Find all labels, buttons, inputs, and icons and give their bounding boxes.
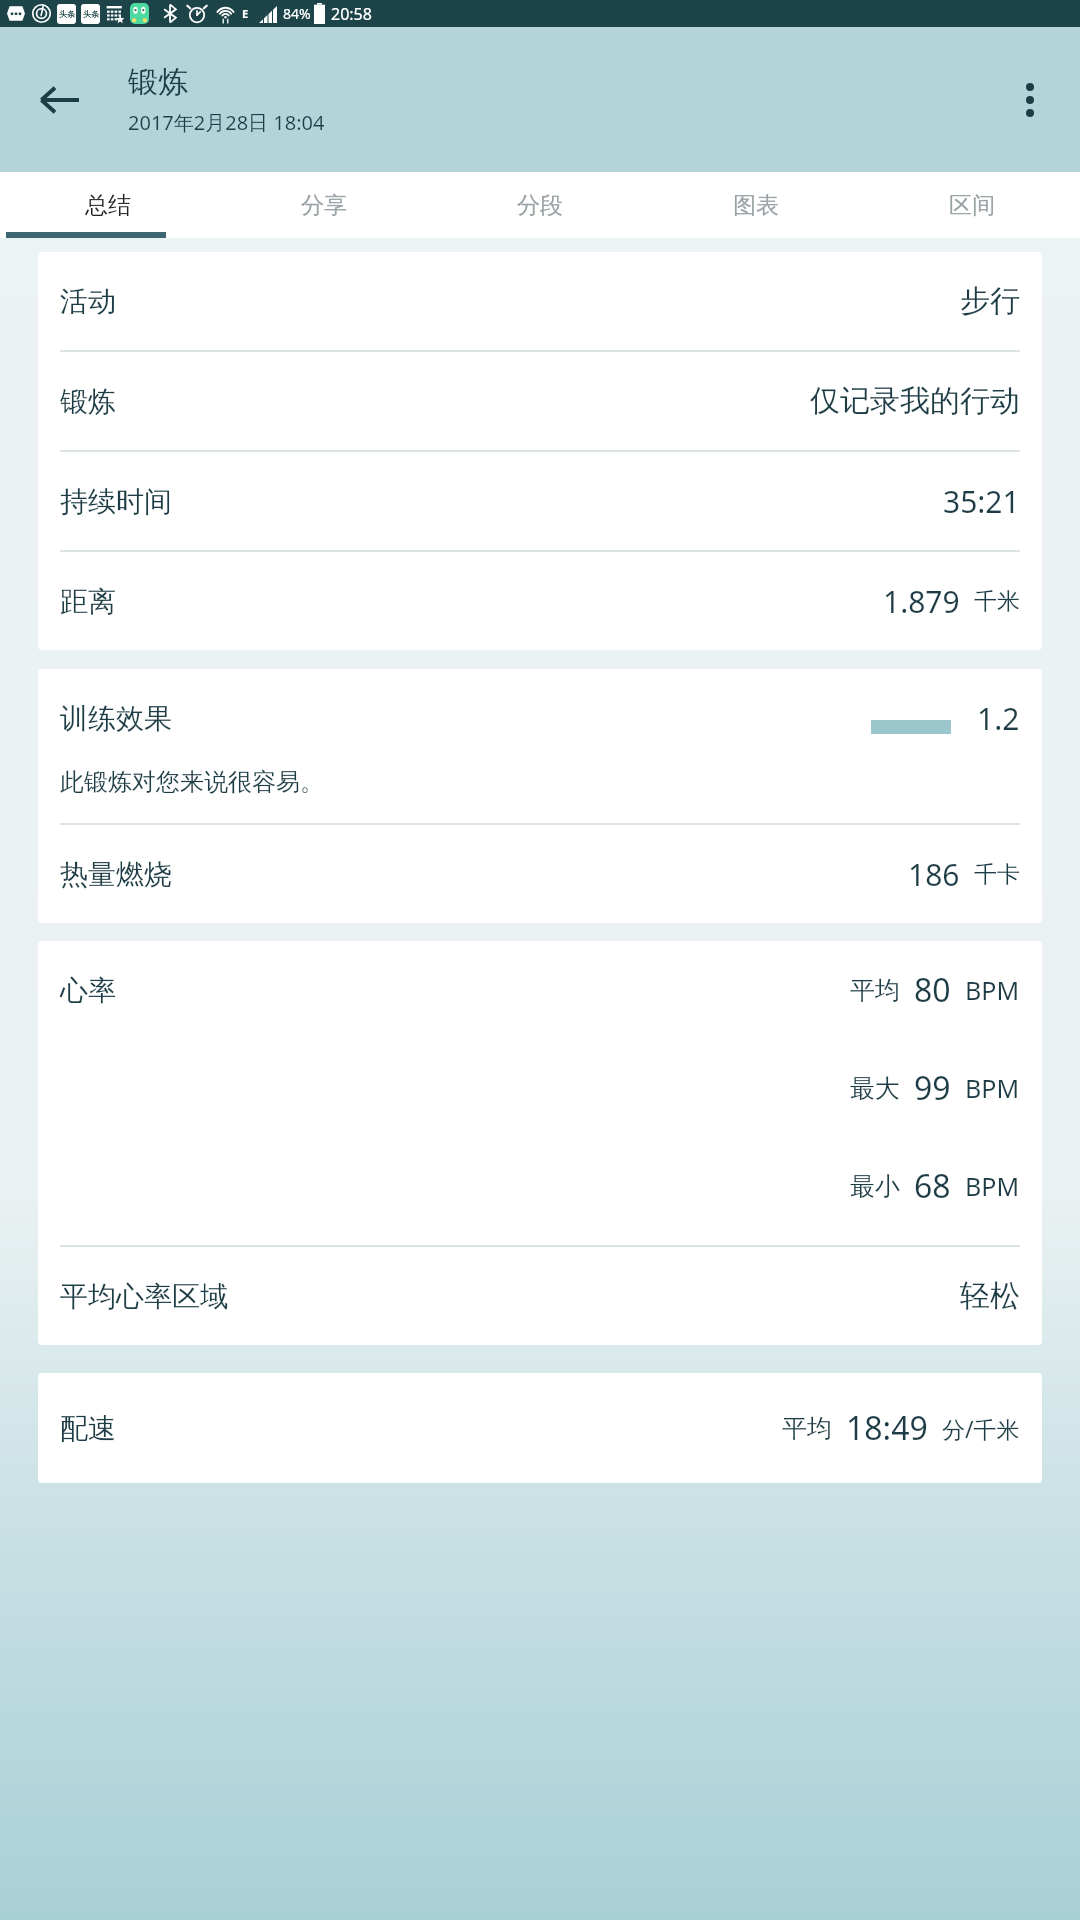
staticText: 锻炼 xyxy=(60,384,116,419)
staticText: 锻炼 xyxy=(128,63,188,101)
button[interactable]: 距离 xyxy=(60,552,1020,650)
staticText: 配速 xyxy=(60,1411,116,1446)
staticText: 分享 xyxy=(301,191,347,220)
staticText: BPM xyxy=(965,1071,1020,1105)
staticText: 仅记录我的行动 xyxy=(810,382,1020,420)
staticText: 步行 xyxy=(960,282,1020,320)
staticText: 186 xyxy=(908,854,960,895)
button[interactable]: 总结 xyxy=(0,172,216,238)
staticText: 最大 xyxy=(850,1073,900,1104)
staticText: 训练效果 xyxy=(60,701,172,736)
staticText: 1.879 xyxy=(883,581,960,622)
staticText: 平均 xyxy=(850,975,900,1006)
staticText: 99 xyxy=(914,1066,951,1110)
staticText: 84% xyxy=(283,4,311,23)
button[interactable]: Back xyxy=(22,63,96,137)
staticText: 此锻炼对您来说很容易。 xyxy=(60,767,324,797)
staticText: 图表 xyxy=(733,191,779,220)
staticText: 平均 xyxy=(782,1413,832,1444)
staticText: E xyxy=(242,6,249,21)
staticText: 距离 xyxy=(60,584,116,619)
staticText: 平均心率区域 xyxy=(60,1279,228,1314)
staticText: 68 xyxy=(914,1164,951,1208)
staticText: 20:58 xyxy=(331,3,372,25)
button[interactable]: 图表 xyxy=(648,172,864,238)
button[interactable]: 最大 xyxy=(60,1039,1020,1137)
button[interactable]: 此锻炼对您来说很容易。 xyxy=(60,767,1042,797)
button[interactable]: 区间 xyxy=(864,172,1080,238)
staticText: 头条 xyxy=(83,9,99,19)
staticText: 分段 xyxy=(517,191,563,220)
staticText: 千卡 xyxy=(974,860,1020,889)
button[interactable]: 活动 xyxy=(60,252,1020,350)
button[interactable]: 分享 xyxy=(216,172,432,238)
staticText: 2017年2月28日 18:04 xyxy=(128,109,325,136)
staticText: 最小 xyxy=(850,1171,900,1202)
button[interactable]: 心率 xyxy=(60,941,1020,1039)
button[interactable]: 配速 xyxy=(60,1373,1020,1483)
staticText: 区间 xyxy=(949,191,995,220)
staticText: 80 xyxy=(914,968,951,1012)
staticText: 热量燃烧 xyxy=(60,857,172,892)
staticText: BPM xyxy=(965,1169,1020,1203)
button[interactable]: 最小 xyxy=(60,1137,1020,1235)
staticText: 头条 xyxy=(59,9,75,19)
staticText: 分/千米 xyxy=(942,1413,1020,1444)
staticText: 1.2 xyxy=(977,698,1020,739)
button[interactable]: More options xyxy=(994,64,1066,136)
staticText: 18:49 xyxy=(846,1406,928,1450)
staticText: 千米 xyxy=(974,587,1020,616)
button[interactable]: 训练效果 xyxy=(60,669,1020,767)
button[interactable]: 平均心率区域 xyxy=(60,1247,1020,1345)
staticText: 总结 xyxy=(85,191,131,220)
staticText: 轻松 xyxy=(960,1277,1020,1315)
staticText: 活动 xyxy=(60,284,116,319)
staticText: 心率 xyxy=(60,973,116,1008)
button[interactable]: 分段 xyxy=(432,172,648,238)
button[interactable]: 锻炼 xyxy=(60,352,1020,450)
button[interactable]: 持续时间 xyxy=(60,452,1020,550)
staticText: 35:21 xyxy=(943,481,1020,522)
staticText: BPM xyxy=(965,973,1020,1007)
button[interactable]: 热量燃烧 xyxy=(60,825,1020,923)
staticText: 持续时间 xyxy=(60,484,172,519)
